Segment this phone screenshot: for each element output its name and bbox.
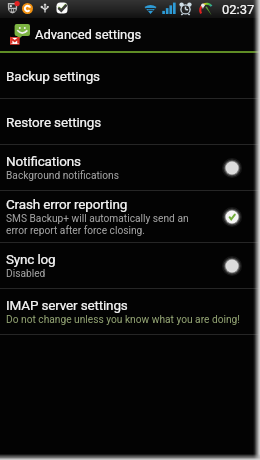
button[interactable]: Notifications <box>0 145 260 190</box>
button[interactable]: Unchecked <box>222 256 242 276</box>
staticText: 02:37 <box>222 2 255 17</box>
staticText: Background notifications <box>6 170 119 182</box>
staticText: Sync log <box>6 251 56 267</box>
staticText: Notifications <box>6 153 81 169</box>
staticText: Crash error reporting <box>6 196 128 212</box>
staticText: Backup settings <box>6 68 100 84</box>
button[interactable]: Backup settings <box>0 53 260 98</box>
button[interactable]: Checked <box>222 207 242 227</box>
staticText: Disabled <box>6 268 46 280</box>
staticText: error report after force closing. <box>6 225 146 237</box>
button[interactable]: Crash error reporting <box>0 191 260 242</box>
staticText: SMS Backup+ will automatically send an <box>6 213 189 225</box>
button[interactable]: Advanced settings <box>0 18 260 51</box>
button[interactable]: Unchecked <box>222 158 242 178</box>
button[interactable]: IMAP server settings <box>0 289 260 334</box>
staticText: Restore settings <box>6 114 102 130</box>
staticText: IMAP server settings <box>6 297 128 313</box>
staticText: Do not change unless you know what you a… <box>6 314 240 326</box>
staticText: Advanced settings <box>35 27 142 42</box>
button[interactable]: Sync log <box>0 243 260 288</box>
button[interactable]: Restore settings <box>0 99 260 144</box>
